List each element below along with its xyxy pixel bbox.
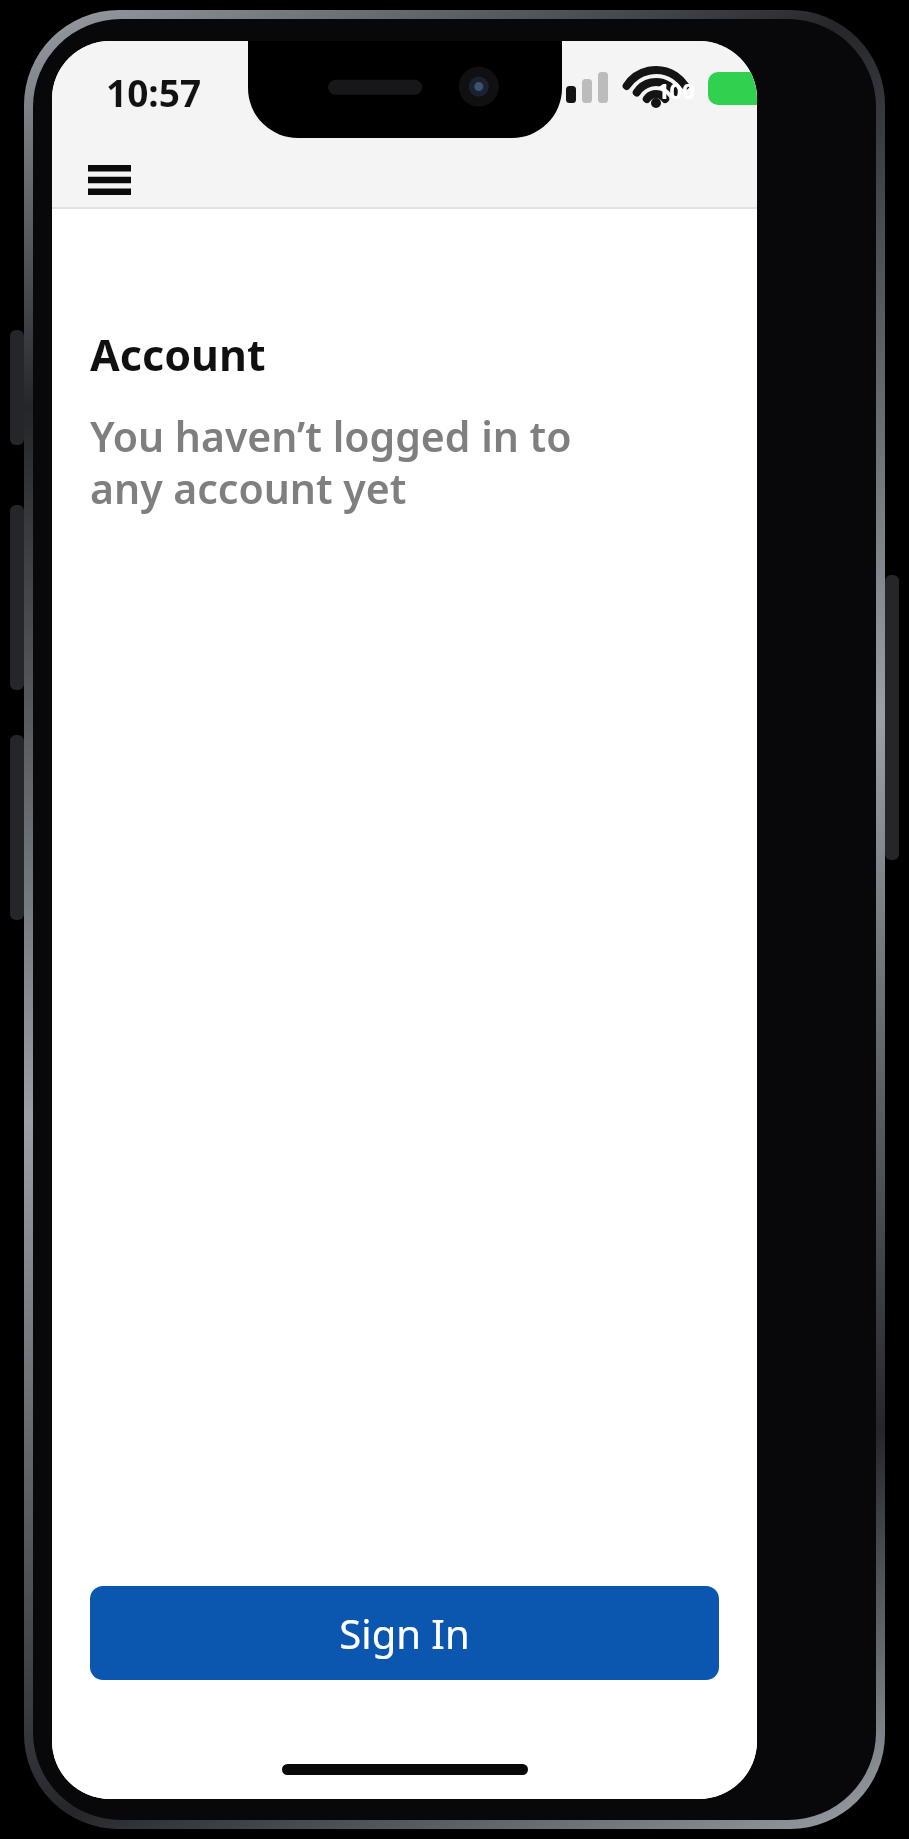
staticText: Account bbox=[90, 325, 266, 384]
staticText: You haven’t logged in to any account yet bbox=[90, 408, 589, 516]
staticText: 100 bbox=[657, 75, 695, 105]
button[interactable]: Open navigation menu bbox=[66, 153, 152, 207]
staticText: 10:57 bbox=[106, 67, 202, 117]
staticText: Sign In bbox=[339, 1606, 470, 1660]
button[interactable]: Sign In bbox=[90, 1586, 719, 1680]
